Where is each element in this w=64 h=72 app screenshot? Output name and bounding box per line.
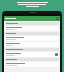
button[interactable]	[5, 42, 59, 47]
button[interactable]: Enabled	[5, 52, 59, 57]
button[interactable]	[5, 36, 59, 41]
button[interactable]	[5, 32, 59, 35]
button[interactable]: Enabled	[55, 53, 58, 56]
button[interactable]	[5, 48, 59, 51]
button[interactable]	[5, 22, 59, 25]
button[interactable]	[5, 62, 59, 67]
button[interactable]	[5, 26, 59, 31]
button[interactable]	[5, 58, 59, 61]
